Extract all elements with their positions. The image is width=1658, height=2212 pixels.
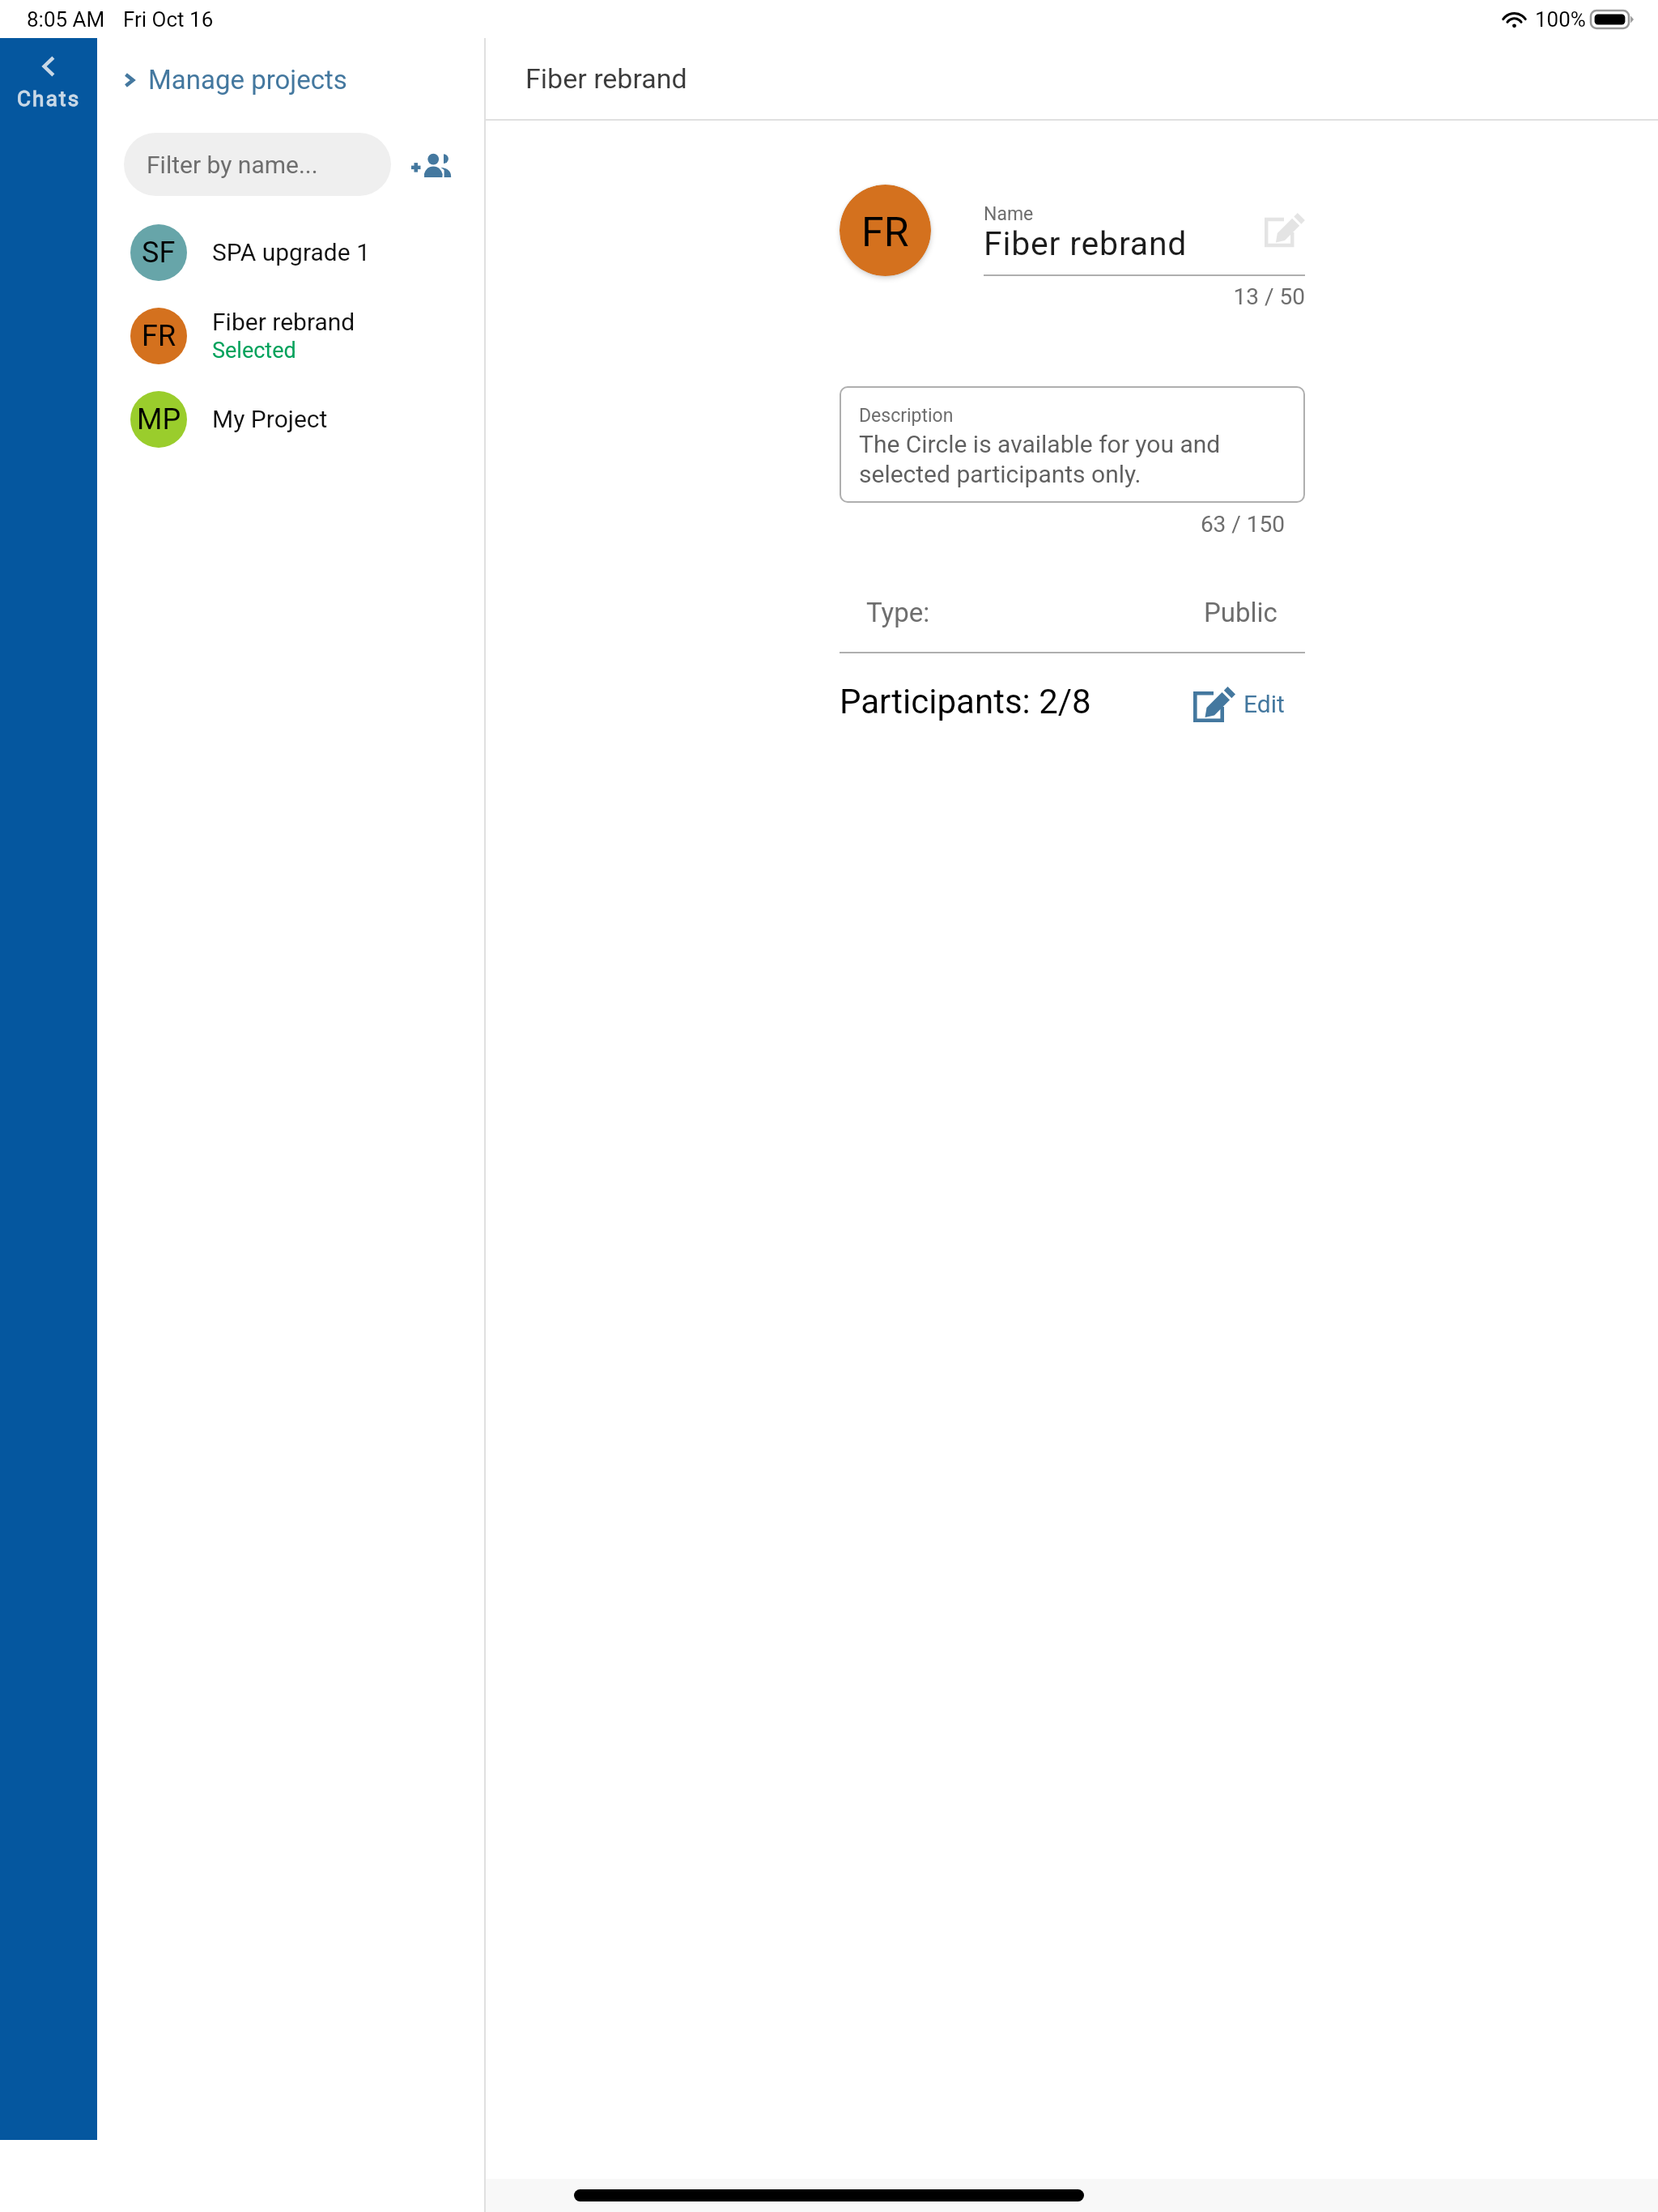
staticText: Edit (1243, 690, 1285, 718)
staticText: Fiber rebrand (984, 224, 1188, 263)
button[interactable]: Filter by name... (124, 133, 391, 196)
staticText: 13 / 50 (984, 283, 1305, 310)
staticText: Selected (212, 338, 296, 364)
staticText: Participants: 2/8 (840, 682, 1091, 721)
button[interactable]: Add participants (405, 138, 458, 191)
staticText: FR (142, 319, 176, 353)
button[interactable]: Description (840, 386, 1305, 503)
staticText: Fiber rebrand (525, 62, 687, 95)
button[interactable]: Edit (1193, 677, 1285, 725)
staticText: FR (861, 209, 909, 257)
staticText: Name (984, 203, 1034, 225)
staticText: Filter by name... (147, 151, 318, 179)
button[interactable]: Edit name (1263, 209, 1305, 251)
staticText: Manage projects (148, 64, 347, 96)
staticText: The Circle is available for you and sele… (859, 430, 1221, 489)
staticText: SPA upgrade 1 (212, 238, 370, 266)
staticText: Fiber rebrand (212, 308, 355, 336)
button[interactable]: SF (97, 211, 484, 294)
staticText: My Project (212, 405, 328, 433)
button[interactable]: FR (97, 294, 484, 377)
button[interactable]: Manage projects (117, 64, 347, 96)
staticText: MP (137, 402, 181, 436)
button[interactable]: Back to Chats (0, 38, 97, 2140)
button[interactable]: Type: (840, 579, 1305, 652)
staticText: SF (142, 236, 176, 270)
staticText: 63 / 150 (840, 511, 1285, 538)
staticText: 8:05 AM (27, 7, 105, 32)
staticText: Type: (866, 597, 930, 628)
staticText: Public (1204, 597, 1278, 628)
staticText: Description (859, 405, 954, 427)
staticText: 100% (1535, 7, 1586, 32)
staticText: Fri Oct 16 (123, 7, 214, 32)
button[interactable]: MP (97, 377, 484, 461)
staticText: Chats (17, 87, 81, 111)
